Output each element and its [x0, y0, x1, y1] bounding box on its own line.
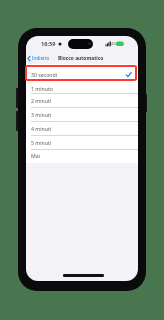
button[interactable]: Indietro	[32, 55, 50, 61]
button[interactable]: Mai	[26, 150, 138, 163]
staticText: 3 minuti	[31, 111, 52, 118]
staticText: 30 secondi	[31, 71, 58, 78]
staticText: Blocco automatico	[58, 55, 104, 62]
staticText: Mai	[31, 152, 40, 159]
staticText: 5 minuti	[31, 139, 52, 146]
staticText: 16:59	[41, 40, 56, 48]
button[interactable]: 4 minuti	[26, 122, 138, 136]
staticText: 2 minuti	[31, 97, 52, 104]
button[interactable]: 3 minuti	[26, 108, 138, 122]
button[interactable]: 1 minuto	[26, 80, 138, 94]
button[interactable]: 30 secondi	[26, 66, 138, 80]
staticText: 4G	[111, 41, 117, 47]
button[interactable]: 5 minuti	[26, 136, 138, 150]
staticText: 4 minuti	[31, 125, 52, 132]
button[interactable]: 2 minuti	[26, 94, 138, 108]
staticText: 1 minuto	[31, 85, 53, 92]
staticText: Indietro	[32, 55, 50, 61]
